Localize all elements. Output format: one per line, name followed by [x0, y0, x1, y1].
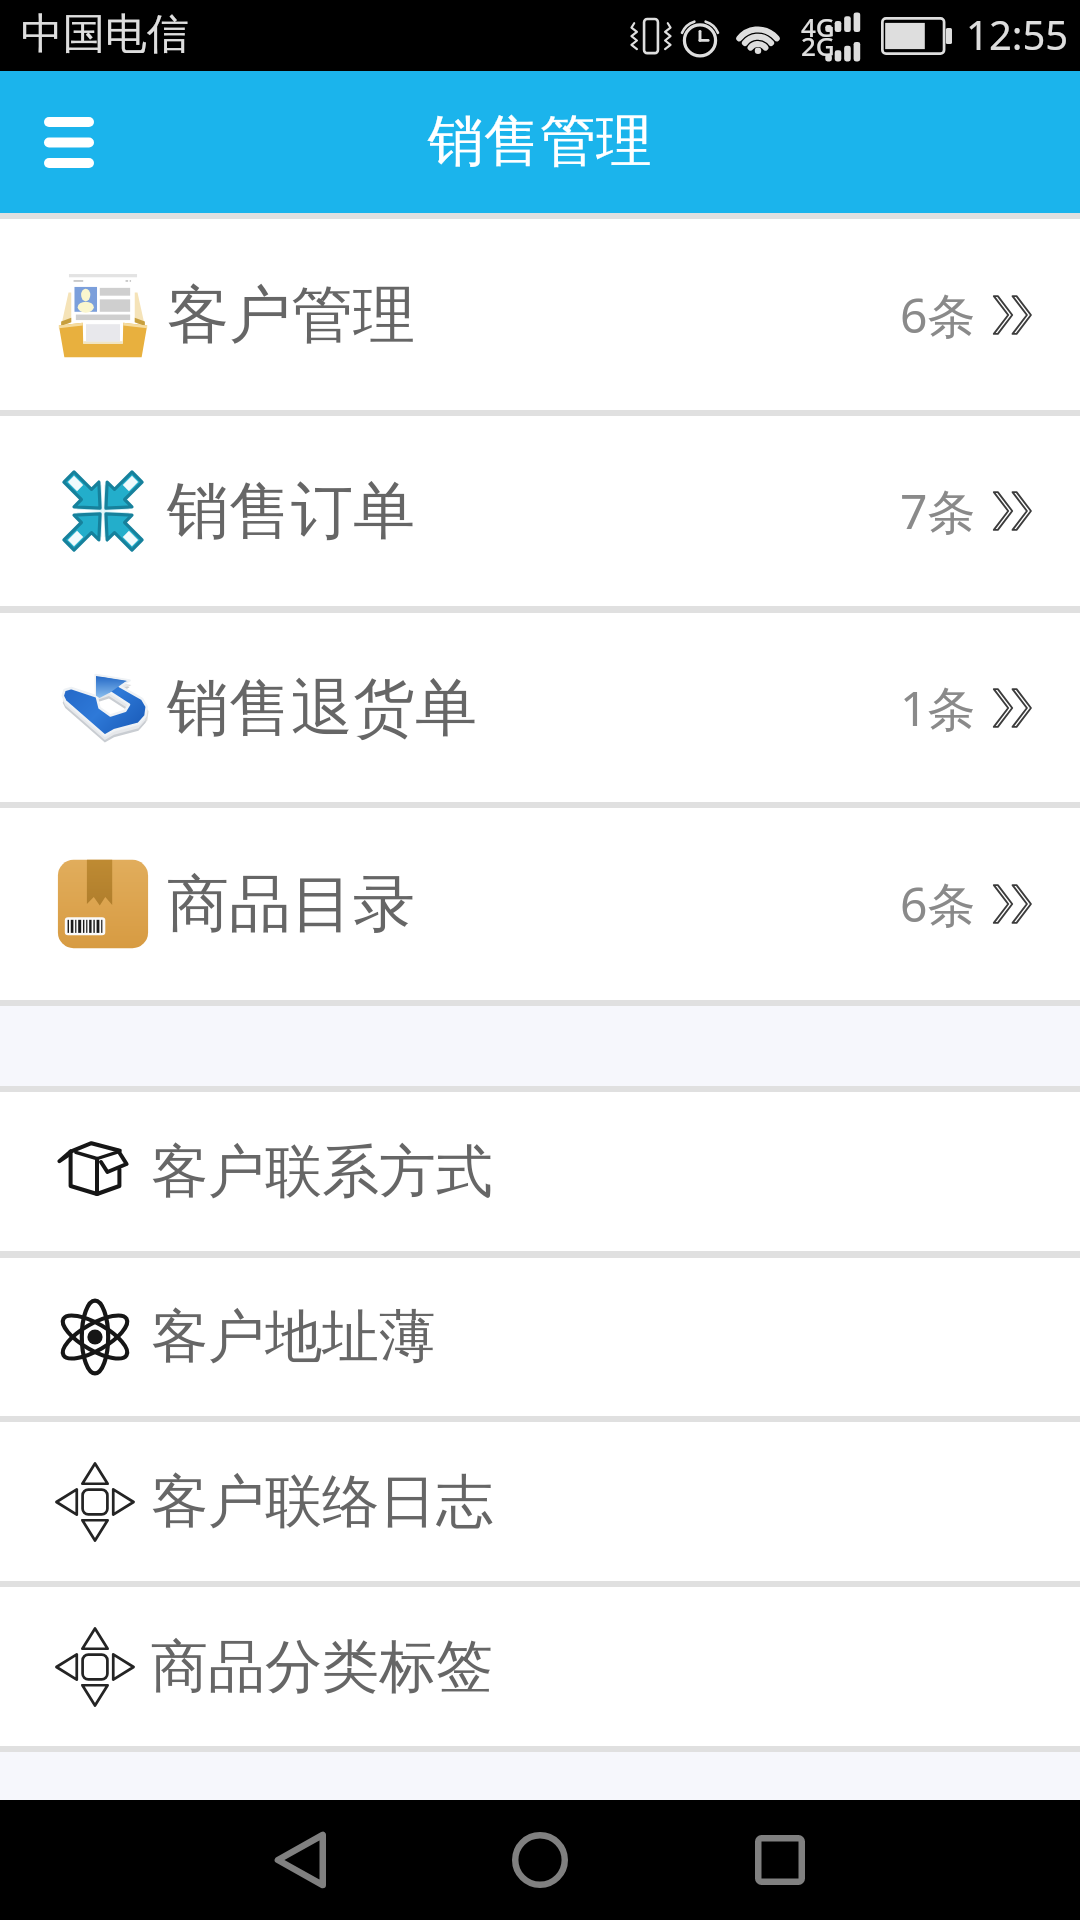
- button[interactable]: 商品目录: [0, 808, 1080, 1000]
- staticText: 1条: [900, 675, 976, 741]
- staticText: 12:55: [966, 7, 1069, 61]
- staticText: 客户管理: [167, 276, 415, 354]
- staticText: 客户地址薄: [151, 1301, 436, 1373]
- staticText: 客户联络日志: [151, 1466, 493, 1538]
- button[interactable]: 销售订单: [0, 416, 1080, 606]
- button[interactable]: 商品分类标签: [0, 1587, 1080, 1746]
- button[interactable]: 客户联系方式: [0, 1092, 1080, 1251]
- staticText: 商品分类标签: [151, 1631, 493, 1703]
- staticText: 4G: [801, 9, 835, 44]
- button[interactable]: Recents: [720, 1800, 840, 1920]
- button[interactable]: 客户管理: [0, 219, 1080, 410]
- staticText: 6条: [900, 282, 976, 348]
- staticText: 中国电信: [21, 8, 189, 61]
- staticText: 销售退货单: [167, 669, 477, 747]
- button[interactable]: Home: [480, 1800, 600, 1920]
- staticText: 销售管理: [428, 106, 652, 177]
- button[interactable]: 销售退货单: [0, 613, 1080, 802]
- staticText: 商品目录: [167, 865, 415, 943]
- staticText: 2G: [801, 28, 835, 63]
- button[interactable]: 客户联络日志: [0, 1422, 1080, 1581]
- staticText: 7条: [900, 478, 976, 544]
- button[interactable]: 客户地址薄: [0, 1258, 1080, 1416]
- button[interactable]: Back: [240, 1800, 360, 1920]
- staticText: 销售订单: [167, 472, 415, 550]
- staticText: 客户联系方式: [151, 1136, 493, 1208]
- button[interactable]: Menu: [19, 92, 119, 192]
- staticText: 6条: [900, 871, 976, 937]
